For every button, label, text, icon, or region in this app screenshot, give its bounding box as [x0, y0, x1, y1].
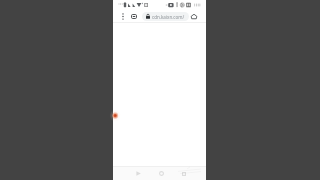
button[interactable]: Switch tabs [128, 10, 140, 22]
button[interactable]: Home [188, 10, 200, 22]
button[interactable]: cdn.kaixn.com/f55d.jpg [142, 12, 189, 21]
button[interactable]: Home [152, 167, 170, 180]
button[interactable]: Back [129, 167, 147, 180]
button[interactable]: More options [118, 10, 127, 22]
button[interactable]: Recent apps [175, 167, 193, 180]
staticText: cdn.kaixn.com/f55d.jpg [152, 14, 189, 20]
